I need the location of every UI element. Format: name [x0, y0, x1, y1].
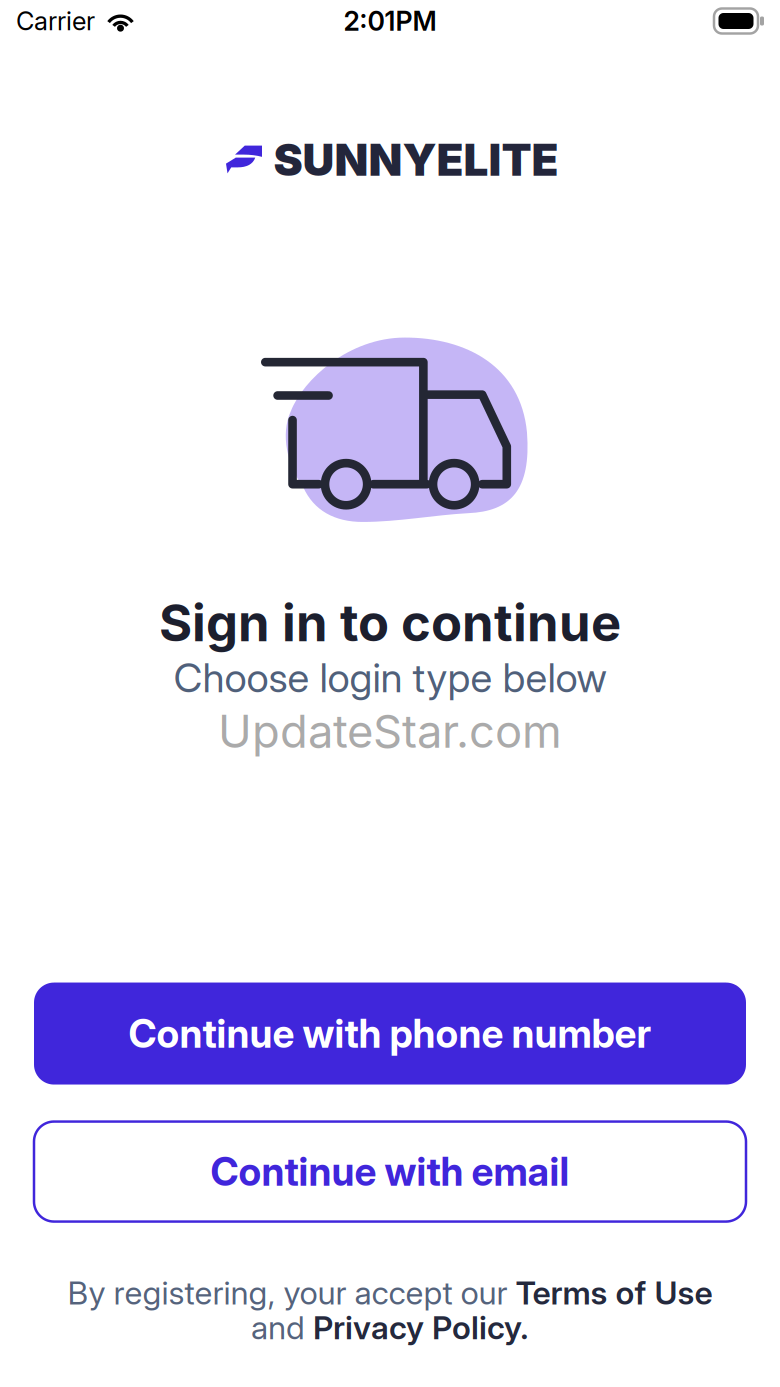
staticText: Continue with email: [210, 1148, 569, 1195]
staticText: Terms of Use: [515, 1274, 712, 1312]
staticText: UpdateStar.com: [218, 704, 562, 759]
staticText: Privacy Policy.: [313, 1308, 529, 1347]
staticText: Continue with phone number: [128, 1010, 651, 1057]
staticText: SUNNYELITE: [273, 133, 558, 186]
staticText: and: [251, 1308, 313, 1347]
staticText: Carrier: [16, 6, 95, 36]
button[interactable]: Continue with email: [34, 1122, 746, 1222]
staticText: 2:01PM: [343, 5, 436, 37]
staticText: By registering, your accept our: [67, 1274, 515, 1312]
staticText: Choose login type below: [173, 653, 606, 702]
staticText: Sign in to continue: [159, 592, 621, 653]
button[interactable]: Continue with phone number: [34, 983, 746, 1085]
